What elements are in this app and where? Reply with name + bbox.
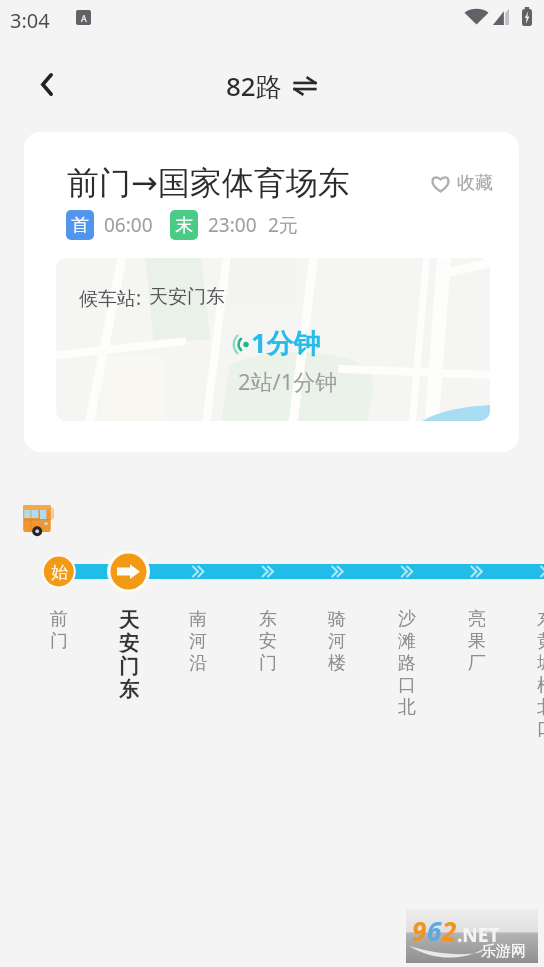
- staticText: 前 门: [50, 608, 68, 653]
- button[interactable]: 天 安 门 东: [99, 608, 159, 702]
- staticText: 亮 果 厂: [468, 608, 486, 675]
- button[interactable]: 收藏: [431, 172, 493, 195]
- button[interactable]: 南 河 沿: [168, 608, 228, 675]
- staticText: 2元: [268, 212, 298, 238]
- staticText: 2: [442, 913, 457, 948]
- staticText: 1分钟: [251, 324, 321, 361]
- staticText: 候车站:: [79, 285, 142, 311]
- staticText: 首: [71, 214, 89, 237]
- staticText: 06:00: [104, 212, 153, 238]
- staticText: 前门→国家体育场东: [67, 163, 350, 203]
- button[interactable]: Reverse direction: [292, 73, 318, 99]
- button[interactable]: Back: [24, 61, 70, 107]
- staticText: 天 安 门 东: [119, 608, 139, 702]
- staticText: A: [81, 12, 87, 24]
- staticText: 沙 滩 路 口 北: [398, 608, 416, 719]
- staticText: 收藏: [457, 172, 493, 195]
- button[interactable]: 前 门: [29, 608, 89, 653]
- staticText: 6: [427, 913, 442, 948]
- button[interactable]: 东 安 门: [238, 608, 298, 675]
- button[interactable]: 沙 滩 路 口 北: [377, 608, 437, 719]
- button[interactable]: 骑 河 楼: [307, 608, 367, 675]
- staticText: 23:00: [208, 212, 257, 238]
- staticText: 82路: [226, 68, 282, 104]
- staticText: 东 安 门: [259, 608, 277, 675]
- staticText: 骑 河 楼: [328, 608, 346, 675]
- staticText: 3:04: [10, 7, 50, 34]
- staticText: 9: [412, 913, 427, 948]
- staticText: .NET: [457, 922, 500, 948]
- staticText: 东 黄 城 根 北 口: [537, 608, 544, 741]
- button[interactable]: 东 黄 城 根 北 口: [516, 608, 544, 741]
- staticText: 天安门东: [149, 285, 225, 309]
- staticText: 始: [51, 562, 68, 583]
- staticText: 末: [175, 214, 193, 237]
- button[interactable]: 亮 果 厂: [447, 608, 507, 675]
- staticText: 南 河 沿: [189, 608, 207, 675]
- staticText: 2站/1分钟: [238, 366, 338, 396]
- staticText: 乐游网: [481, 942, 526, 961]
